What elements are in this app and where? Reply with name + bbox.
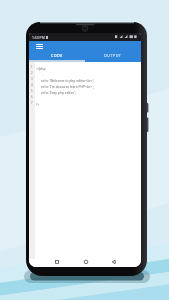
staticText: echo 'Easy php editor'; — [41, 90, 76, 94]
staticText: 7 — [31, 101, 33, 105]
staticText: echo 'Welcome to php editor<br>'; — [41, 78, 95, 82]
staticText: <?php — [36, 66, 46, 70]
staticText: 2 — [31, 71, 33, 75]
button[interactable] — [104, 259, 141, 267]
button[interactable] — [36, 44, 43, 49]
staticText: 3 — [31, 77, 33, 81]
staticText: CODE — [51, 53, 63, 58]
staticText: 6 — [31, 95, 33, 99]
staticText: 4 — [31, 83, 33, 87]
button[interactable] — [29, 259, 67, 267]
staticText: ?> — [36, 102, 40, 106]
staticText: 1:53 PM — [32, 35, 45, 40]
staticText: 1 — [31, 65, 33, 69]
staticText: echo 'I'm about to learn PHP<br>'; — [41, 84, 94, 88]
button[interactable] — [67, 259, 104, 267]
button[interactable]: OUTPUT — [85, 51, 141, 60]
staticText: 5 — [31, 89, 33, 93]
button[interactable]: CODE — [29, 51, 85, 60]
staticText: OUTPUT — [104, 53, 122, 58]
